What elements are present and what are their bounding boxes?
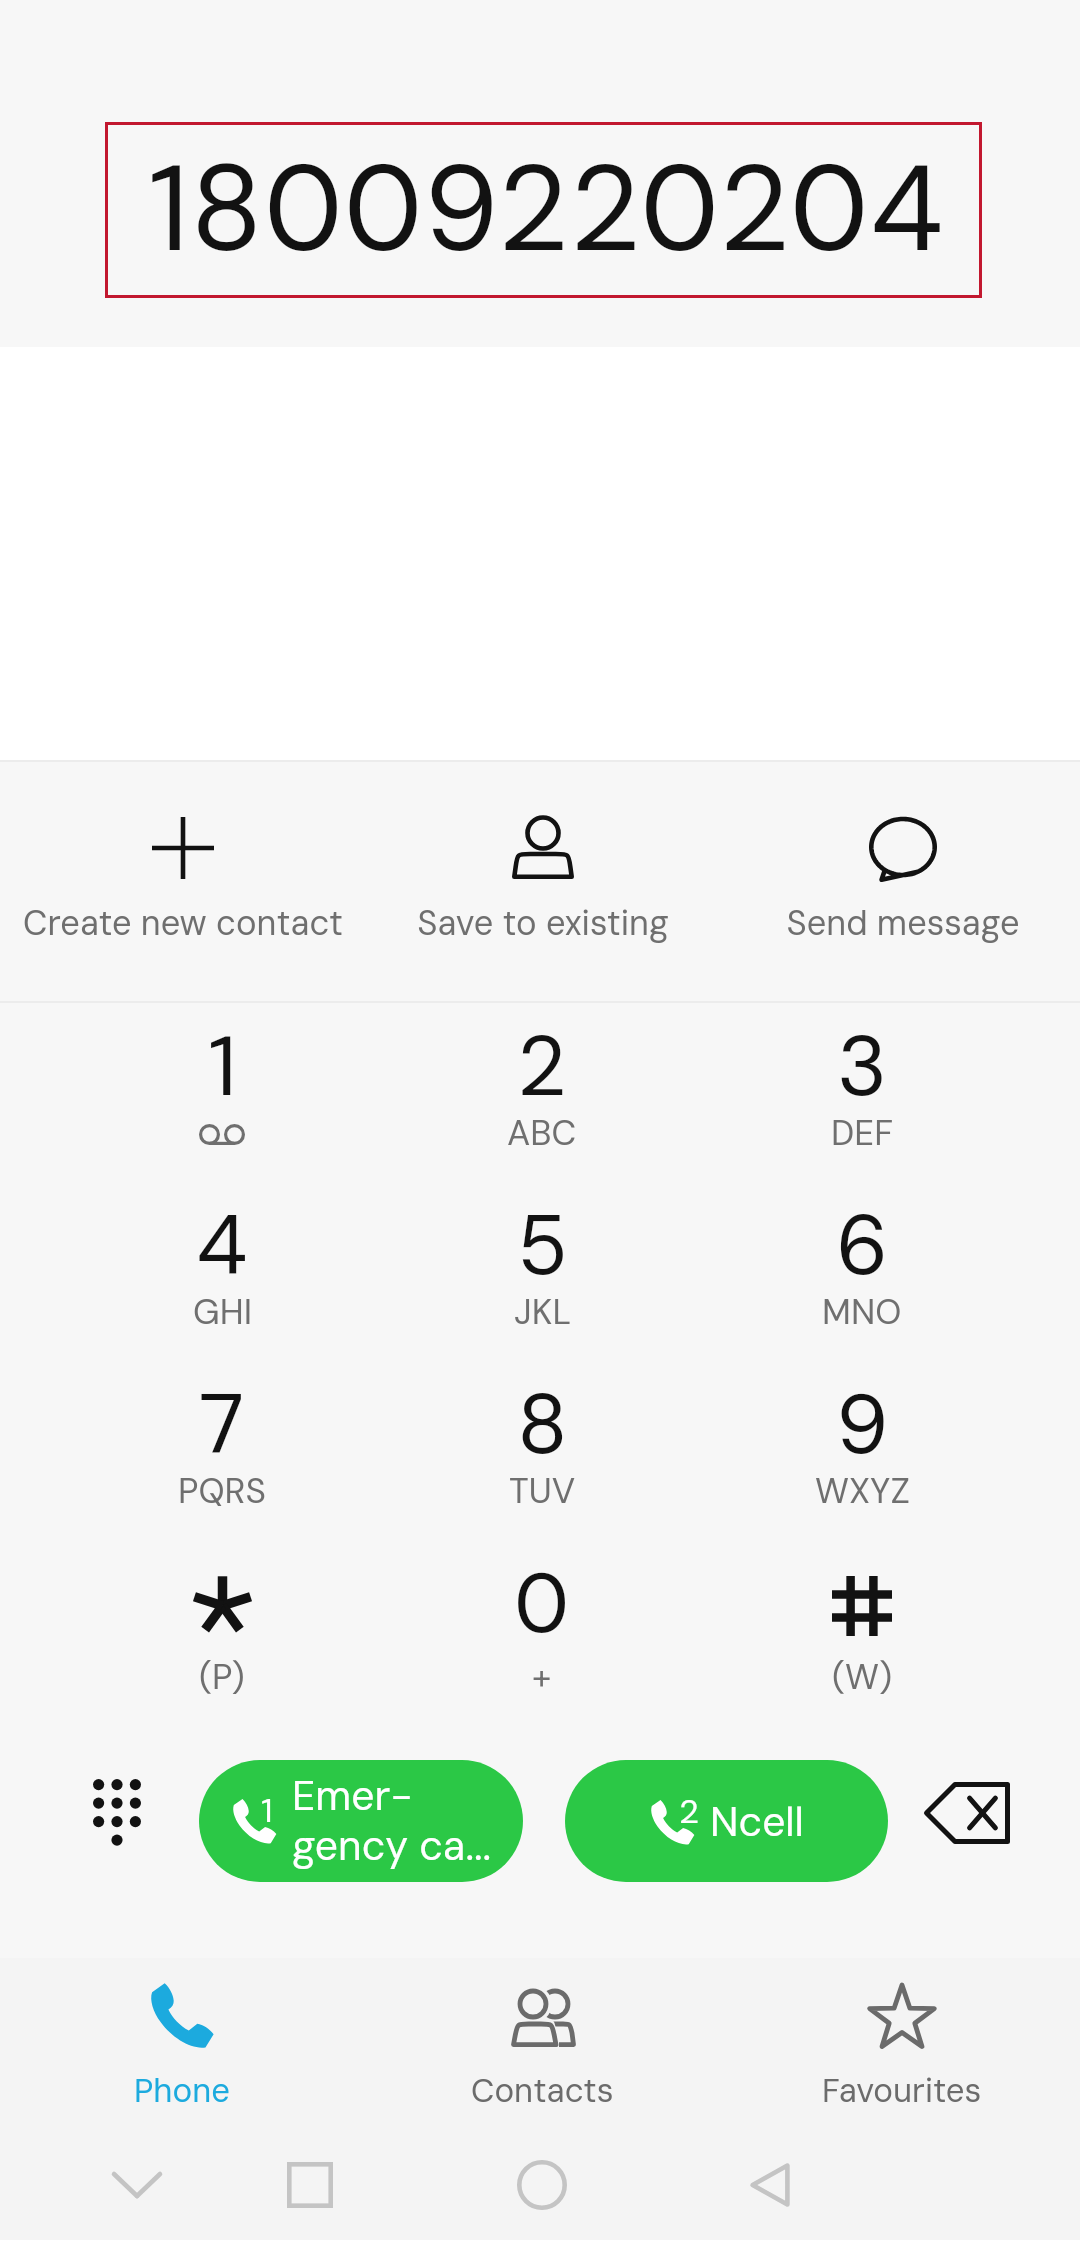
staticText: (W) (832, 1654, 893, 1700)
button[interactable]: 6 (702, 1182, 1022, 1291)
staticText: TUV (509, 1468, 576, 1514)
button[interactable]: 0 (382, 1540, 702, 1649)
button[interactable]: Back (715, 2130, 825, 2240)
button[interactable]: (P) (62, 1540, 382, 1599)
staticText: JKL (514, 1289, 571, 1335)
staticText: 9 (836, 1370, 889, 1479)
staticText: 8 (517, 1370, 568, 1479)
button[interactable]: 5 (382, 1182, 702, 1291)
button[interactable]: Backspace (911, 1752, 1023, 1874)
button[interactable]: Home (487, 2130, 597, 2240)
button[interactable]: Phone number (105, 122, 982, 298)
staticText: Favourites (822, 2069, 982, 2112)
staticText: 2 (679, 1789, 700, 1833)
button[interactable]: Save to existing (360, 762, 720, 824)
button[interactable]: 7 (62, 1361, 382, 1470)
button[interactable]: 1 (199, 1760, 523, 1882)
button[interactable]: 8 (382, 1361, 702, 1470)
staticText: Create new contact (23, 901, 343, 946)
staticText: 5 (517, 1191, 568, 1300)
staticText: Send message (786, 901, 1020, 946)
staticText: 0 (514, 1549, 570, 1658)
staticText: DEF (831, 1110, 894, 1156)
button[interactable]: Hide keyboard (82, 2130, 192, 2240)
staticText: Contacts (471, 2069, 614, 2112)
staticText: 7 (199, 1370, 245, 1479)
staticText: 1 (208, 1012, 237, 1121)
button[interactable]: 4 (62, 1182, 382, 1291)
button[interactable]: 1 (62, 1003, 382, 1112)
button[interactable]: Phone (0, 1958, 360, 2026)
staticText: + (532, 1654, 552, 1700)
button[interactable]: (W) (702, 1540, 1022, 1600)
staticText: 1 (261, 1788, 273, 1832)
button[interactable]: 9 (702, 1361, 1022, 1470)
staticText: WXYZ (815, 1468, 910, 1514)
staticText: Phone (134, 2069, 230, 2112)
staticText: 18009220204 (148, 131, 945, 287)
button[interactable]: Send message (720, 762, 1080, 827)
button[interactable]: Favourites (720, 1958, 1080, 2026)
staticText: 4 (196, 1191, 248, 1300)
button[interactable]: Contacts (360, 1958, 720, 2016)
staticText: ABC (507, 1110, 577, 1156)
staticText: 2 (517, 1012, 567, 1121)
staticText: Emer- gency ca... (292, 1769, 492, 1873)
staticText: 6 (836, 1191, 889, 1300)
staticText: PQRS (178, 1468, 266, 1514)
staticText: Ncell (710, 1795, 804, 1848)
button[interactable]: Recents (255, 2130, 365, 2240)
button[interactable]: 2 (382, 1003, 702, 1112)
staticText: (P) (199, 1654, 245, 1700)
staticText: 3 (837, 1012, 888, 1121)
staticText: MNO (822, 1289, 902, 1335)
staticText: GHI (193, 1289, 252, 1335)
button[interactable]: 3 (702, 1003, 1022, 1112)
button[interactable]: Create new contact (0, 762, 360, 824)
staticText: Save to existing (417, 901, 669, 946)
button[interactable]: Show dialpad (61, 1752, 173, 1874)
button[interactable]: 2 (565, 1760, 888, 1882)
